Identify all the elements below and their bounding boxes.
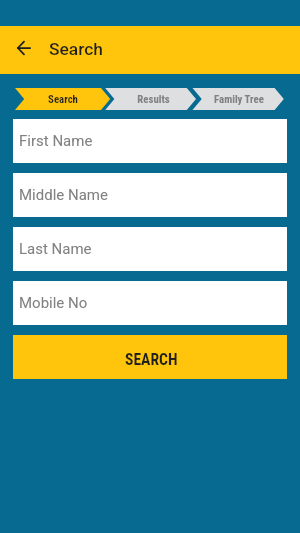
staticText: SEARCH [125, 351, 178, 369]
button[interactable]: Last Name [13, 227, 287, 271]
staticText: First Name [19, 132, 93, 150]
staticText: Search [48, 93, 78, 106]
button[interactable]: Search [15, 88, 110, 110]
button[interactable]: Back [9, 33, 39, 63]
button[interactable]: Family Tree [193, 88, 284, 110]
staticText: Results [137, 93, 170, 106]
staticText: Last Name [19, 240, 92, 258]
button[interactable]: First Name [13, 119, 287, 163]
staticText: Search [49, 39, 103, 59]
staticText: Mobile No [19, 294, 88, 312]
staticText: Family Tree [214, 93, 264, 106]
staticText: Middle Name [19, 186, 108, 204]
button[interactable]: Middle Name [13, 173, 287, 217]
button[interactable]: Mobile No [13, 281, 287, 325]
button[interactable]: SEARCH [13, 335, 287, 379]
button[interactable]: Results [108, 88, 199, 110]
